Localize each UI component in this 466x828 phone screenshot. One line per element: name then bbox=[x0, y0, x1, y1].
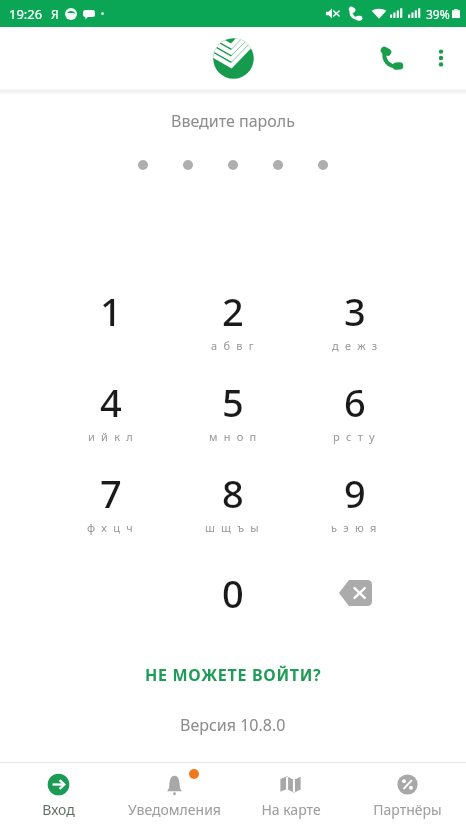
button[interactable]: 3 bbox=[294, 285, 416, 376]
button[interactable]: Backspace bbox=[294, 567, 416, 658]
staticText: 3 bbox=[344, 285, 366, 337]
button[interactable]: 5 bbox=[172, 376, 294, 467]
button[interactable]: На карте bbox=[232, 763, 349, 828]
staticText: а б в г bbox=[211, 338, 256, 353]
staticText: и й к л bbox=[88, 429, 135, 444]
staticText: р с т у bbox=[333, 429, 377, 444]
staticText: ь э ю я bbox=[331, 520, 379, 535]
staticText: 5 bbox=[222, 376, 244, 428]
button[interactable]: 4 bbox=[50, 376, 172, 467]
staticText: ш щ ъ ы bbox=[205, 520, 261, 535]
staticText: 9 bbox=[344, 467, 366, 519]
button[interactable]: 2 bbox=[172, 285, 294, 376]
staticText: Вход bbox=[42, 800, 75, 819]
button[interactable]: Партнёры bbox=[349, 763, 466, 828]
staticText: 39% bbox=[426, 6, 450, 22]
staticText: д е ж з bbox=[332, 338, 379, 353]
button[interactable]: Call bbox=[368, 34, 416, 82]
staticText: Партнёры bbox=[373, 800, 442, 819]
staticText: Введите пароль bbox=[171, 110, 295, 132]
button[interactable]: 8 bbox=[172, 467, 294, 558]
button[interactable]: Вход bbox=[0, 763, 116, 828]
staticText: 2 bbox=[222, 285, 244, 337]
button[interactable]: 1 bbox=[50, 285, 172, 376]
button[interactable]: 7 bbox=[50, 467, 172, 558]
staticText: 4 bbox=[100, 376, 122, 428]
staticText: 6 bbox=[344, 376, 366, 428]
staticText: 8 bbox=[222, 467, 244, 519]
staticText: ф х ц ч bbox=[87, 520, 135, 535]
staticText: НЕ МОЖЕТЕ ВОЙТИ? bbox=[145, 664, 322, 686]
staticText: Версия 10.8.0 bbox=[180, 714, 286, 736]
button[interactable]: Уведомления bbox=[116, 763, 232, 828]
staticText: Я bbox=[51, 6, 59, 22]
button[interactable]: 6 bbox=[294, 376, 416, 467]
staticText: На карте bbox=[261, 800, 321, 819]
button[interactable]: НЕ МОЖЕТЕ ВОЙТИ? bbox=[131, 657, 336, 693]
button[interactable]: More options bbox=[416, 33, 466, 83]
staticText: Уведомления bbox=[128, 800, 221, 819]
button[interactable]: 9 bbox=[294, 467, 416, 558]
staticText: 1 bbox=[100, 285, 122, 337]
staticText: 0 bbox=[222, 567, 244, 619]
staticText: 7 bbox=[100, 467, 122, 519]
staticText: 19:26 bbox=[9, 5, 43, 23]
staticText: м н о п bbox=[209, 429, 258, 444]
button[interactable]: 0 bbox=[172, 567, 294, 658]
